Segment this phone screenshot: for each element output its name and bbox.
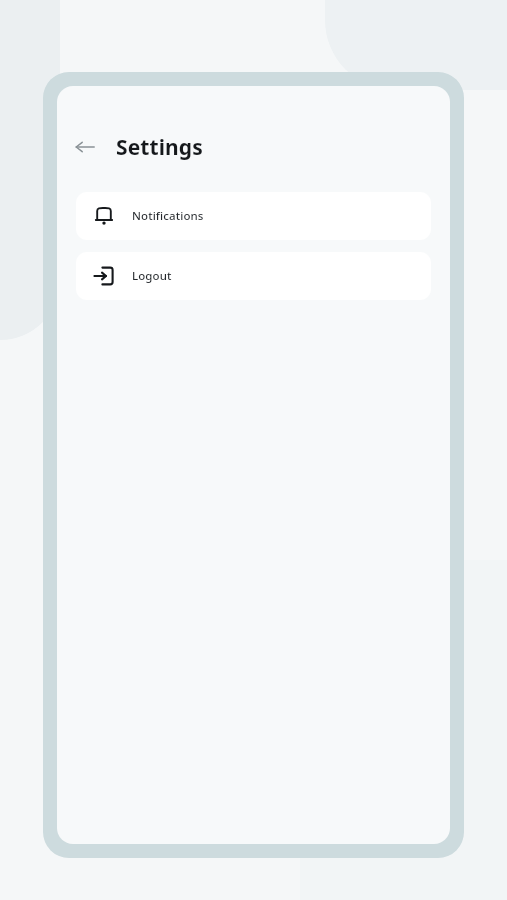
staticText: Notifications (132, 208, 204, 224)
staticText: Logout (132, 268, 172, 284)
button[interactable]: Back (66, 128, 104, 166)
staticText: Settings (116, 133, 203, 162)
button[interactable]: Logout (76, 252, 431, 300)
button[interactable]: Notifications (76, 192, 431, 240)
